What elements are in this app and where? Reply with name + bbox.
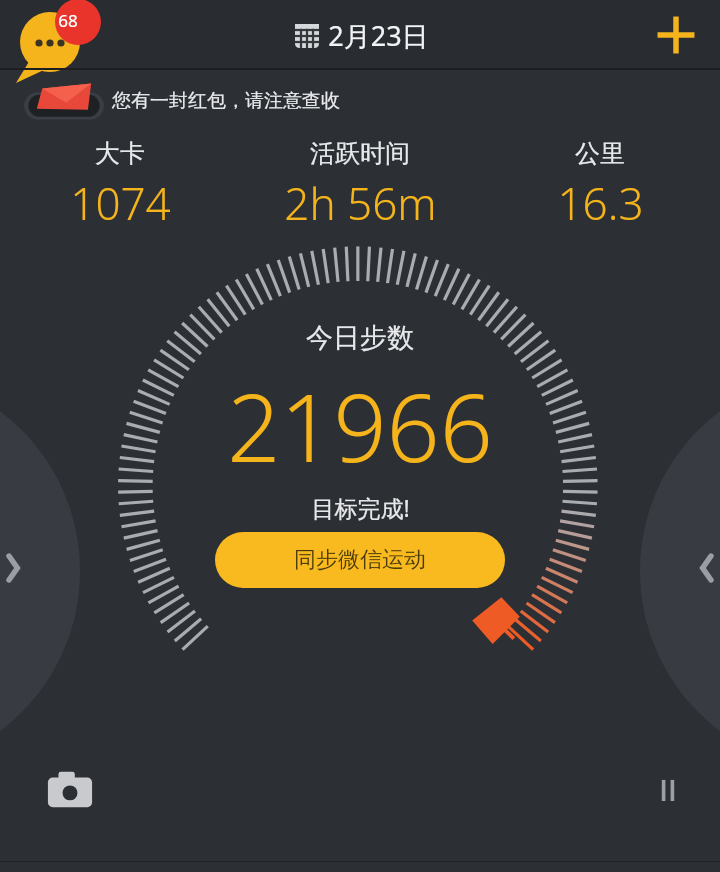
button[interactable]: Pause xyxy=(646,772,690,816)
staticText: 活跃时间 xyxy=(310,138,410,169)
button[interactable]: 活跃时间 xyxy=(240,138,480,233)
button[interactable]: 公里 xyxy=(480,138,720,233)
staticText: 1074 xyxy=(70,173,171,233)
button[interactable]: 同步微信运动 xyxy=(215,532,505,588)
button[interactable]: Previous panel xyxy=(0,545,30,591)
button[interactable]: 您有一封红包，请注意查收 xyxy=(0,70,720,132)
staticText: 大卡 xyxy=(95,138,145,169)
staticText: 68 xyxy=(58,9,78,32)
staticText: 同步微信运动 xyxy=(294,546,426,574)
staticText: 公里 xyxy=(575,138,625,169)
staticText: 16.3 xyxy=(557,173,644,233)
staticText: 您有一封红包，请注意查收 xyxy=(112,89,340,113)
button[interactable]: 大卡 xyxy=(0,138,240,233)
button[interactable]: Messages, 68 unread xyxy=(6,4,86,66)
button[interactable]: Camera xyxy=(46,766,94,814)
button[interactable]: Next panel xyxy=(690,545,720,591)
staticText: 21966 xyxy=(227,363,493,490)
button[interactable]: Add xyxy=(648,7,704,63)
staticText: 今日步数 xyxy=(306,321,414,355)
button[interactable]: 2月23日 xyxy=(292,17,429,54)
staticText: 目标完成! xyxy=(311,492,410,523)
staticText: 2月23日 xyxy=(328,17,429,54)
staticText: 等级: 非常活跃 xyxy=(288,535,432,565)
staticText: 2h 56m xyxy=(284,173,437,233)
